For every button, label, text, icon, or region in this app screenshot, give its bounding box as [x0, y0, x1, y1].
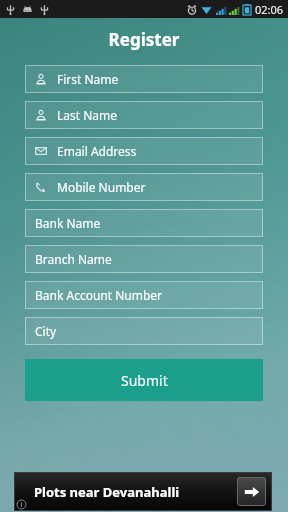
button[interactable]: City: [25, 317, 263, 345]
button[interactable]: Bank Name: [25, 209, 263, 237]
button[interactable]: Branch Name: [25, 245, 263, 273]
staticText: Branch Name: [35, 251, 112, 267]
button[interactable]: Open ad: [237, 477, 266, 506]
staticText: 02:06: [255, 2, 284, 17]
button[interactable]: Bank Account Number: [25, 281, 263, 309]
staticText: Last Name: [57, 107, 118, 123]
staticText: Register: [0, 28, 288, 51]
staticText: Mobile Number: [57, 179, 146, 195]
staticText: Bank Name: [35, 215, 101, 231]
button[interactable]: [14, 472, 272, 511]
button[interactable]: Mobile Number: [25, 173, 263, 201]
staticText: Bank Account Number: [35, 287, 163, 303]
staticText: Email Address: [57, 143, 137, 159]
button[interactable]: Email Address: [25, 137, 263, 165]
button[interactable]: First Name: [25, 65, 263, 93]
staticText: First Name: [57, 71, 119, 87]
staticText: Submit: [121, 371, 168, 390]
staticText: City: [35, 323, 57, 339]
button[interactable]: Submit: [25, 359, 263, 401]
button[interactable]: Last Name: [25, 101, 263, 129]
staticText: Plots near Devanahalli: [34, 483, 180, 501]
